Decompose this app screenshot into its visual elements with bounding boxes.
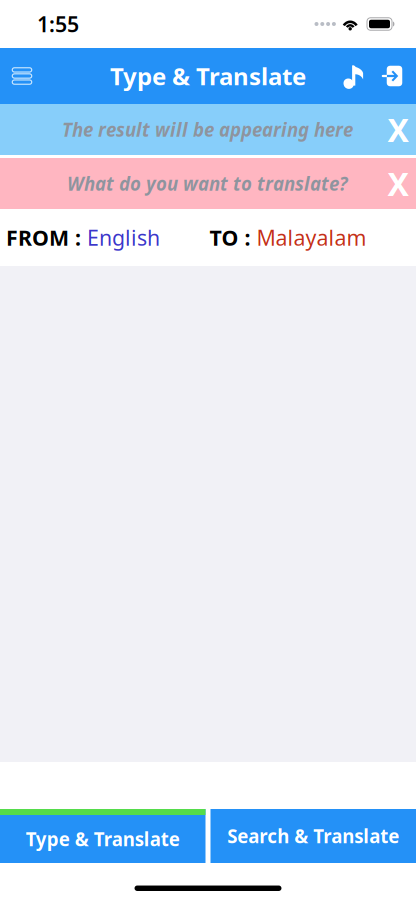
button[interactable]: Search & Translate	[210, 809, 416, 863]
staticText: English	[81, 223, 160, 252]
button[interactable]: FROM :	[0, 209, 160, 266]
staticText: 1:55	[37, 10, 79, 38]
button[interactable]: Sign in	[375, 48, 409, 104]
staticText: TO :	[209, 223, 250, 252]
button[interactable]: Menu	[2, 48, 42, 104]
staticText: X	[387, 108, 408, 151]
staticText: Type & Translate	[26, 827, 180, 851]
staticText: Type & Translate	[110, 60, 306, 92]
button[interactable]: Type & Translate	[0, 809, 205, 863]
staticText: FROM :	[6, 223, 81, 252]
button[interactable]: The result will be appearing here	[0, 104, 416, 155]
staticText: What do you want to translate?	[67, 171, 348, 196]
button[interactable]: TO :	[209, 209, 366, 266]
staticText: Search & Translate	[227, 824, 399, 848]
staticText: Malayalam	[250, 223, 366, 252]
button[interactable]: What do you want to translate?	[0, 158, 416, 209]
button[interactable]: Clear text	[381, 158, 415, 209]
button[interactable]: Clear text	[381, 104, 415, 155]
staticText: The result will be appearing here	[62, 117, 353, 142]
staticText: X	[387, 162, 408, 205]
button[interactable]: Sound	[343, 48, 375, 104]
